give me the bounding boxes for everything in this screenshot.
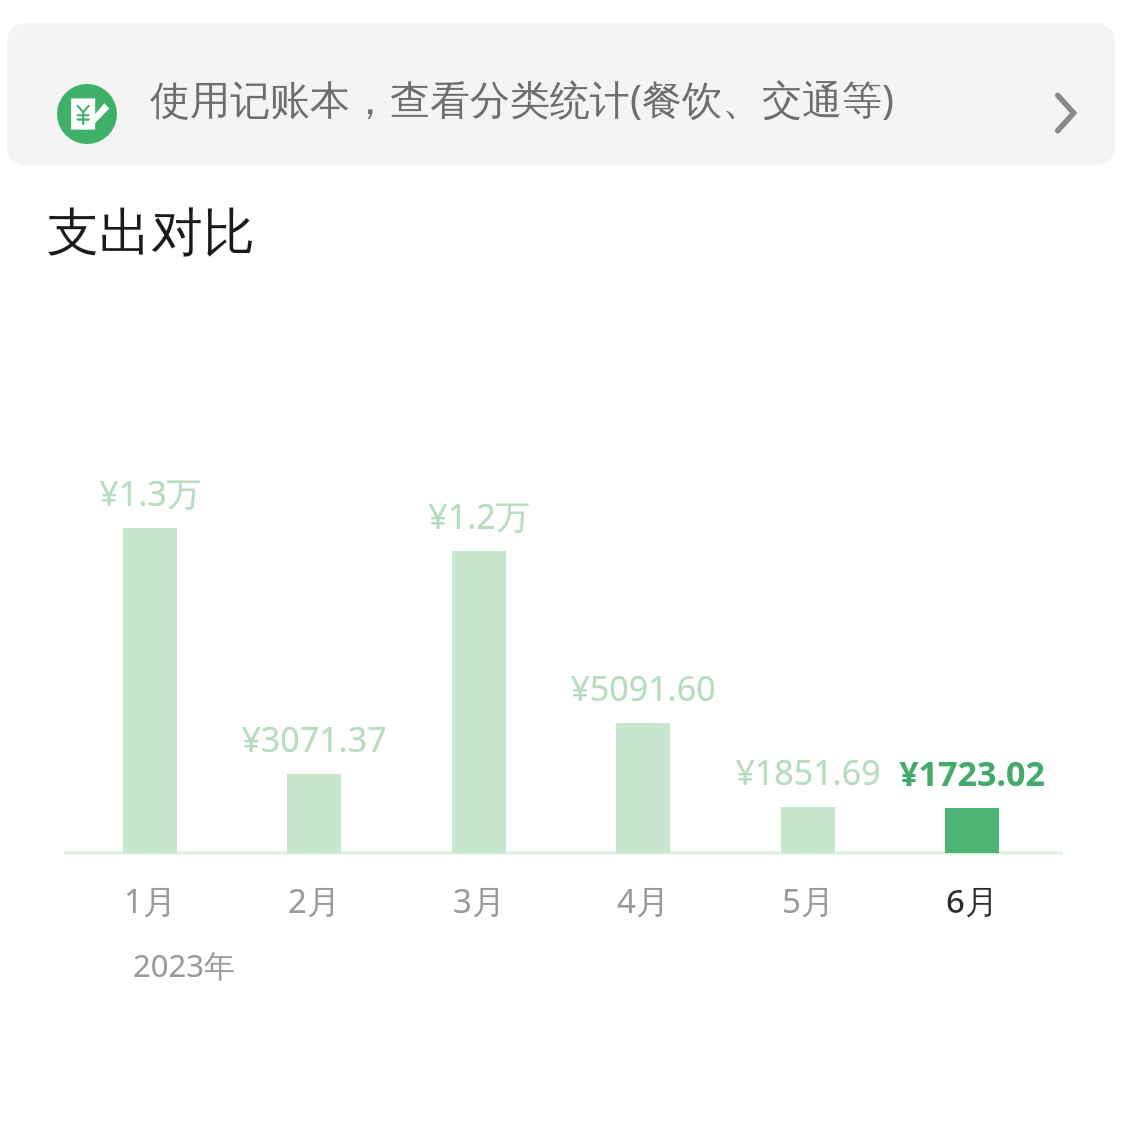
staticText: 使用记账本，查看分类统计(餐饮、交通等) — [150, 71, 894, 126]
button[interactable]: 使用记账本，查看分类统计(餐饮、交通等) — [7, 23, 1115, 165]
button[interactable]: 2月 — [214, 878, 414, 923]
staticText: 2023年 — [133, 944, 235, 986]
button[interactable]: ¥1851.69 — [658, 749, 958, 795]
staticText: ¥1.2万 — [329, 493, 629, 539]
staticText: 4月 — [543, 878, 743, 923]
button[interactable]: ¥5091.60 — [493, 665, 793, 711]
button[interactable]: ¥1.2万 — [329, 493, 629, 539]
staticText: 5月 — [708, 878, 908, 923]
button[interactable]: 3月 — [379, 878, 579, 923]
button[interactable]: 5月 — [708, 878, 908, 923]
staticText: 2月 — [214, 878, 414, 923]
button[interactable]: 4月 — [543, 878, 743, 923]
staticText: ¥1851.69 — [658, 749, 958, 795]
staticText: ¥1.3万 — [0, 470, 300, 516]
button[interactable]: 1月 — [50, 878, 250, 923]
staticText: ¥5091.60 — [493, 665, 793, 711]
staticText: 3月 — [379, 878, 579, 923]
staticText: ¥3071.37 — [164, 716, 464, 762]
staticText: 支出对比 — [47, 200, 255, 266]
button[interactable]: 6月 — [872, 878, 1072, 923]
other: 查看更多 — [1047, 87, 1083, 139]
button[interactable]: ¥1723.02 — [822, 750, 1122, 796]
button[interactable]: ¥3071.37 — [164, 716, 464, 762]
staticText: ¥1723.02 — [822, 750, 1122, 796]
staticText: 1月 — [50, 878, 250, 923]
staticText: 6月 — [872, 878, 1072, 923]
button[interactable]: ¥1.3万 — [0, 470, 300, 516]
